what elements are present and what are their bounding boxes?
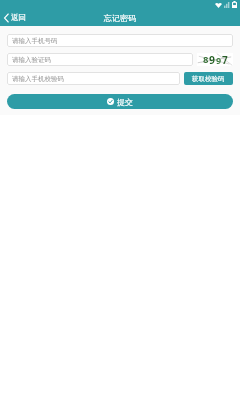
staticText: 7: [222, 53, 228, 66]
staticText: 8: [203, 53, 209, 66]
button[interactable]: 提交: [7, 94, 233, 109]
staticText: 请输入手机号码: [12, 37, 58, 45]
staticText: 获取校验码: [192, 75, 225, 83]
staticText: 忘记密码: [104, 13, 136, 23]
other: Back: [4, 14, 9, 22]
button[interactable]: 获取校验码: [184, 72, 233, 85]
button[interactable]: 请输入验证码: [7, 53, 193, 66]
staticText: 9: [209, 53, 216, 66]
button[interactable]: 请输入手机校验码: [7, 72, 180, 85]
staticText: 请输入验证码: [12, 56, 51, 64]
staticText: 9: [216, 54, 222, 66]
button[interactable]: Back: [0, 11, 32, 24]
button[interactable]: 8: [197, 53, 233, 66]
button[interactable]: 请输入手机号码: [7, 34, 233, 47]
staticText: 提交: [117, 97, 133, 107]
staticText: 请输入手机校验码: [12, 75, 64, 83]
staticText: 返回: [11, 13, 26, 22]
